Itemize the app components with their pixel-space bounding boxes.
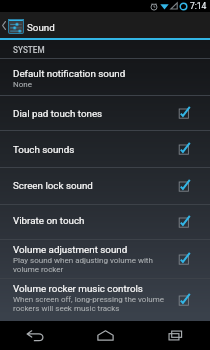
button[interactable]: Recent apps — [140, 321, 210, 350]
staticText: Sound — [27, 22, 55, 33]
staticText: Vibrate on touch — [13, 215, 85, 226]
button[interactable]: Vibrate on touch — [0, 205, 210, 239]
button[interactable]: Home — [70, 321, 140, 350]
staticText: SYSTEM — [13, 45, 45, 55]
staticText: None — [13, 80, 32, 89]
button[interactable]: Volume adjustment sound — [0, 240, 210, 278]
staticText: Play sound when adjusting volume with — [13, 256, 153, 265]
staticText: Default notification sound — [13, 68, 126, 79]
staticText: 7:14 — [190, 1, 207, 11]
button[interactable]: Navigate up — [0, 12, 210, 38]
staticText: Volume adjustment sound — [13, 244, 128, 255]
other: Enabled — [179, 295, 191, 306]
other: Enabled — [179, 254, 191, 265]
staticText: When screen off, long-pressing the volum… — [13, 295, 165, 304]
button[interactable]: Default notification sound — [0, 59, 210, 95]
other: Enabled — [179, 181, 191, 192]
staticText: volume rocker — [13, 265, 64, 274]
staticText: Screen lock sound — [13, 180, 93, 191]
staticText: rockers will seek music tracks — [13, 304, 120, 313]
staticText: Volume rocker music controls — [13, 283, 143, 294]
button[interactable]: Touch sounds — [0, 131, 210, 167]
button[interactable]: Volume rocker music controls — [0, 279, 210, 321]
staticText: Dial pad touch tones — [13, 108, 103, 119]
other: Enabled — [179, 144, 191, 155]
other: Enabled — [179, 108, 191, 119]
button[interactable]: Back — [0, 321, 70, 350]
button[interactable]: Screen lock sound — [0, 168, 210, 204]
other: Enabled — [179, 217, 191, 228]
button[interactable]: Dial pad touch tones — [0, 96, 210, 130]
staticText: Touch sounds — [13, 144, 75, 155]
